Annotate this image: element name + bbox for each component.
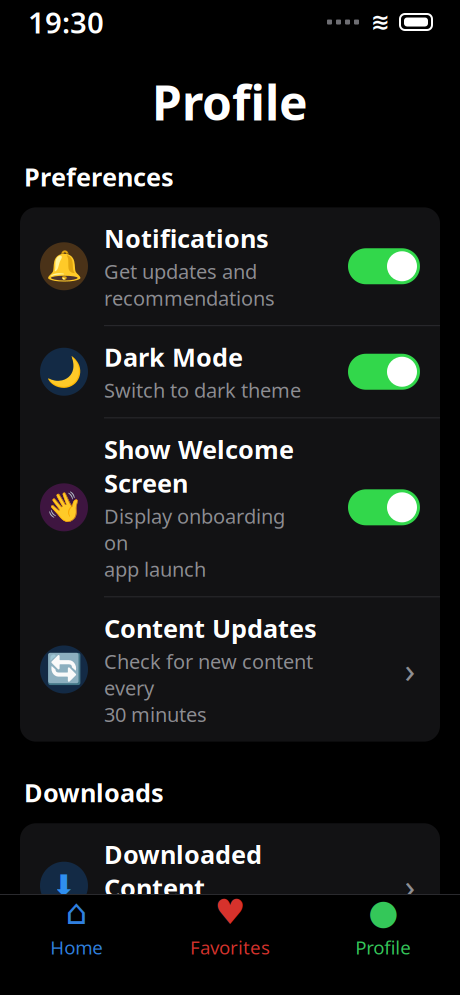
button[interactable]: 👋 [20,418,440,596]
button[interactable]: ● [307,882,460,967]
staticText: ⬇ [51,869,76,902]
staticText: 👋 [45,491,82,524]
staticText: Get updates and recommendations [104,258,275,311]
staticText: ● [368,892,398,932]
button[interactable]: 🔄 [20,597,440,742]
staticText: Switch to dark theme [104,377,301,403]
staticText: 🌙 [45,355,82,388]
staticText: Content Updates [104,611,317,645]
button[interactable]: ⬇ [20,823,440,948]
staticText: Show Welcome Screen [104,432,294,500]
staticText: Downloads [24,776,164,809]
staticText: 19:30 [28,2,104,41]
staticText: Dark Mode [104,340,243,374]
staticText: 🔄 [45,653,82,686]
staticText: ≋ [371,9,390,35]
staticText: Profile [152,70,308,134]
staticText: Downloaded Content [104,837,262,905]
button[interactable]: 🔔 [20,207,440,325]
button[interactable]: ♥ [153,882,307,967]
staticText: Favorites [190,935,270,960]
button[interactable]: ≋ [20,949,440,995]
staticText: › [404,863,415,909]
staticText: Home [50,935,103,960]
staticText: Preferences [24,160,174,193]
button[interactable]: 🌙 [20,326,440,417]
staticText: ⌂ [66,892,88,932]
staticText: Profile [355,935,411,960]
staticText: 0 items • Zero KB [104,908,262,934]
staticText: 🔔 [45,249,82,283]
button[interactable]: ⌂ [0,882,153,967]
staticText: Notifications [104,221,269,255]
staticText: Check for new content every 30 minutes [104,648,313,728]
staticText: ♥ [214,892,245,932]
staticText: Display onboarding on app launch [104,503,285,582]
staticText: › [404,646,415,692]
